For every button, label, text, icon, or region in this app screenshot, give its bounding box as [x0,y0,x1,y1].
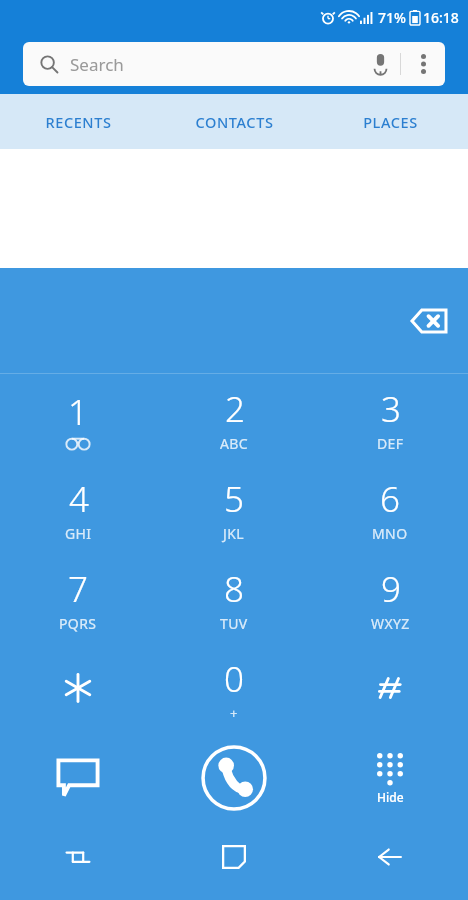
staticText: MNO [372,524,408,543]
button[interactable]: 8 [156,554,312,644]
button[interactable]: Voice search [360,44,400,84]
button[interactable]: Message [0,732,156,824]
button[interactable]: 1 [0,374,156,464]
staticText: 2 [225,385,245,433]
button[interactable]: star [0,644,156,732]
button[interactable]: CONTACTS [156,94,312,149]
staticText: ABC [220,434,249,453]
staticText: 3 [381,385,401,433]
button[interactable]: 5 [156,464,312,554]
staticText: PLACES [363,112,418,132]
button[interactable]: 9 [312,554,468,644]
staticText: 9 [381,565,401,613]
staticText: 1 [68,388,88,436]
button[interactable]: hash [312,644,468,732]
staticText: GHI [65,524,92,543]
button[interactable]: 6 [312,464,468,554]
button[interactable]: 3 [312,374,468,464]
button[interactable]: Back [312,824,468,890]
staticText: 5 [224,475,244,523]
staticText: 8 [224,565,244,613]
button[interactable]: 7 [0,554,156,644]
button[interactable]: 0 [156,644,312,732]
staticText: WXYZ [371,614,410,633]
staticText: 6 [380,475,400,523]
button[interactable]: Home [156,824,312,890]
staticText: DEF [377,434,404,453]
staticText: 71% [378,8,406,27]
button[interactable]: 2 [156,374,312,464]
button[interactable]: PLACES [312,94,468,149]
staticText: Search [70,53,124,76]
button[interactable]: 4 [0,464,156,554]
staticText: 16:18 [423,8,459,27]
staticText: CONTACTS [195,112,274,132]
staticText: 4 [69,475,89,523]
staticText: 7 [68,565,88,613]
button[interactable]: RECENTS [0,94,156,149]
staticText: + [230,704,238,722]
button[interactable]: More options [401,42,445,86]
button[interactable]: Hide keypad [312,732,468,824]
staticText: 0 [224,655,244,703]
staticText: PQRS [59,614,97,633]
staticText: TUV [220,614,248,633]
staticText: RECENTS [45,112,112,132]
button[interactable]: Call [156,732,312,824]
staticText: Hide [377,789,404,805]
button[interactable]: Backspace [397,293,461,349]
button[interactable]: Search [23,42,445,86]
staticText: JKL [223,524,245,543]
button[interactable]: Recents [0,824,156,890]
